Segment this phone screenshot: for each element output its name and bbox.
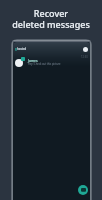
- button[interactable]: Profile: [83, 47, 88, 52]
- staticText: hosted: [17, 47, 27, 51]
- button[interactable]: New message: [78, 185, 88, 195]
- staticText: Hey! Check out this picture: [28, 62, 61, 66]
- staticText: James: [28, 58, 38, 62]
- button[interactable]: James: [13, 55, 90, 65]
- staticText: 12:30: [81, 55, 88, 59]
- staticText: g: [15, 47, 17, 51]
- staticText: Recover deleted messages: [12, 7, 90, 31]
